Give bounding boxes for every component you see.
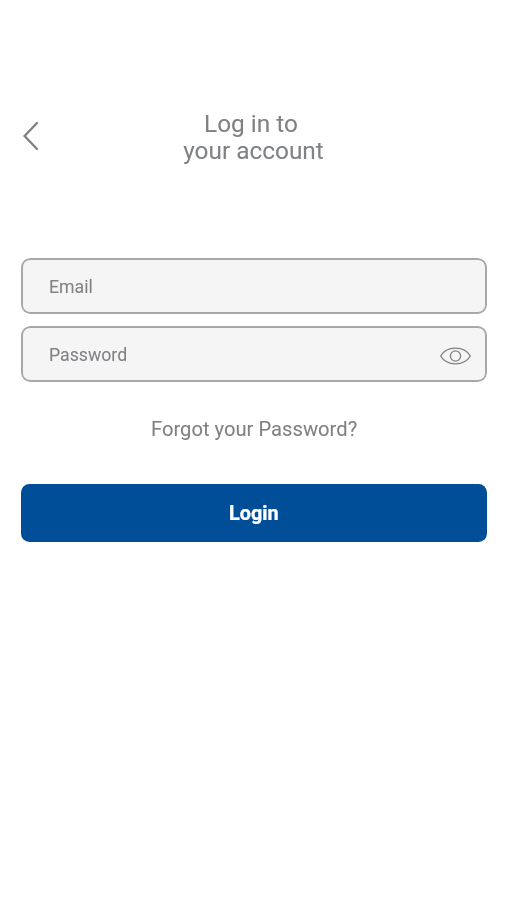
button[interactable]: Email bbox=[21, 258, 487, 314]
staticText: Password bbox=[49, 345, 128, 366]
button[interactable]: Login bbox=[21, 484, 487, 542]
staticText: Login bbox=[229, 502, 279, 525]
staticText: Log in to bbox=[204, 109, 298, 138]
button[interactable]: Password bbox=[21, 326, 487, 382]
button[interactable]: Forgot your Password? bbox=[147, 413, 362, 445]
staticText: your account bbox=[183, 136, 324, 165]
staticText: Email bbox=[49, 277, 93, 298]
button[interactable]: Back bbox=[6, 112, 54, 160]
button[interactable]: Show password bbox=[437, 338, 473, 374]
